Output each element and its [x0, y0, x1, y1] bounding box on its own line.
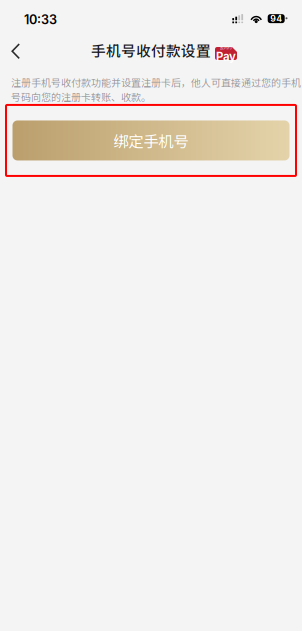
staticText: 注册手机号收付款功能并设置注册卡后，他人可直接通过您的手机号码向您的注册卡转账、…: [11, 75, 301, 104]
staticText: Pay: [216, 50, 236, 63]
staticText: 94: [270, 13, 282, 24]
staticText: 云闪付: [220, 44, 232, 50]
button[interactable]: Back: [0, 34, 32, 68]
staticText: 绑定手机号: [113, 129, 188, 152]
button[interactable]: 绑定手机号: [12, 120, 289, 160]
staticText: 10:33: [24, 12, 57, 27]
staticText: 手机号收付款设置: [91, 39, 211, 61]
